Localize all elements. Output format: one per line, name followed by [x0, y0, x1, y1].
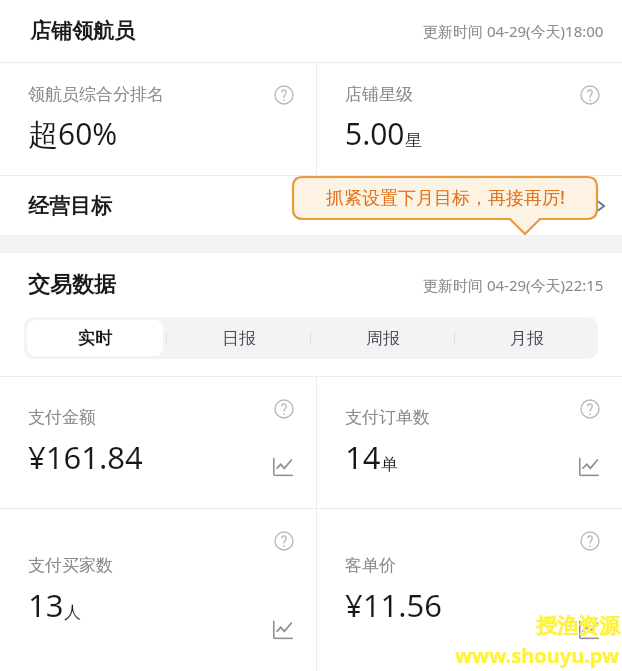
button[interactable]: 抓紧设置下月目标，再接再厉!	[293, 177, 597, 234]
staticText: 5.00	[345, 113, 405, 154]
staticText: 月报	[510, 328, 544, 349]
button[interactable]: 月报	[458, 320, 595, 356]
button[interactable]: 日报	[170, 320, 307, 356]
staticText: 设置经营目标，科学管理日常运营	[348, 196, 588, 216]
button[interactable]: 周报	[314, 320, 451, 356]
button[interactable]: 支付订单数	[317, 377, 622, 508]
button[interactable]: Help	[580, 531, 600, 551]
staticText: 经营目标	[28, 193, 112, 219]
staticText: 单	[381, 454, 398, 475]
staticText: 领航员综合分排名	[28, 84, 164, 105]
staticText: 授渔资源	[536, 613, 620, 639]
staticText: 黄岛主分享会	[460, 621, 550, 640]
staticText: 超60%	[28, 113, 118, 154]
button[interactable]: Trend chart	[272, 619, 294, 641]
button[interactable]: 实时	[27, 320, 163, 356]
staticText: 支付金额	[28, 407, 96, 428]
button[interactable]: Help	[580, 85, 600, 105]
button[interactable]: 客单价	[317, 509, 622, 671]
button[interactable]: Help	[274, 531, 294, 551]
staticText: 星	[405, 130, 422, 151]
staticText: 抓紧设置下月目标，再接再厉!	[326, 185, 565, 210]
staticText: 14	[345, 436, 381, 478]
staticText: 店铺领航员	[30, 18, 135, 44]
staticText: 交易数据	[28, 271, 116, 299]
staticText: 店铺星级	[345, 84, 413, 105]
staticText: 支付订单数	[345, 407, 430, 428]
button[interactable]: Trend chart	[578, 456, 600, 478]
staticText: 客单价	[345, 555, 396, 576]
button[interactable]: Help	[274, 399, 294, 419]
staticText: 更新时间 04-29(今天)18:00	[423, 21, 604, 41]
button[interactable]: Help	[274, 85, 294, 105]
staticText: 更新时间 04-29(今天)22:15	[423, 275, 604, 295]
button[interactable]: Help	[580, 399, 600, 419]
staticText: 周报	[366, 328, 400, 349]
staticText: www.shouyu.pw	[455, 642, 620, 669]
button[interactable]: 店铺星级	[317, 63, 622, 175]
button[interactable]: 支付买家数	[0, 509, 316, 671]
staticText: 13	[28, 584, 64, 626]
button[interactable]: 支付金额	[0, 377, 316, 508]
staticText: ¥161.84	[28, 436, 143, 478]
button[interactable]: 经营目标	[0, 176, 622, 235]
staticText: 人	[64, 602, 81, 623]
button[interactable]: 领航员综合分排名	[0, 63, 316, 175]
staticText: ¥11.56	[345, 584, 442, 626]
button[interactable]: Trend chart	[578, 619, 600, 641]
staticText: 实时	[78, 328, 112, 349]
staticText: 支付买家数	[28, 555, 113, 576]
staticText: 日报	[222, 328, 256, 349]
button[interactable]: 店铺领航员	[0, 0, 622, 62]
button[interactable]: Trend chart	[272, 456, 294, 478]
